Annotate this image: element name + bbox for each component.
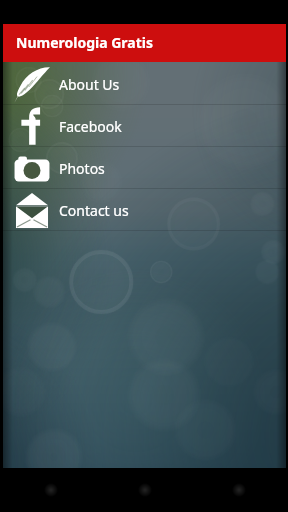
button[interactable]: About Us [3,63,286,105]
staticText: About Us [59,75,120,94]
button[interactable]: Contact us [3,189,286,231]
staticText: Facebook [59,117,122,136]
staticText: Numerologia Gratis [16,33,153,52]
staticText: Contact us [59,201,129,220]
staticText: Photos [59,159,105,178]
button[interactable]: Facebook [3,105,286,147]
button[interactable]: Photos [3,147,286,189]
